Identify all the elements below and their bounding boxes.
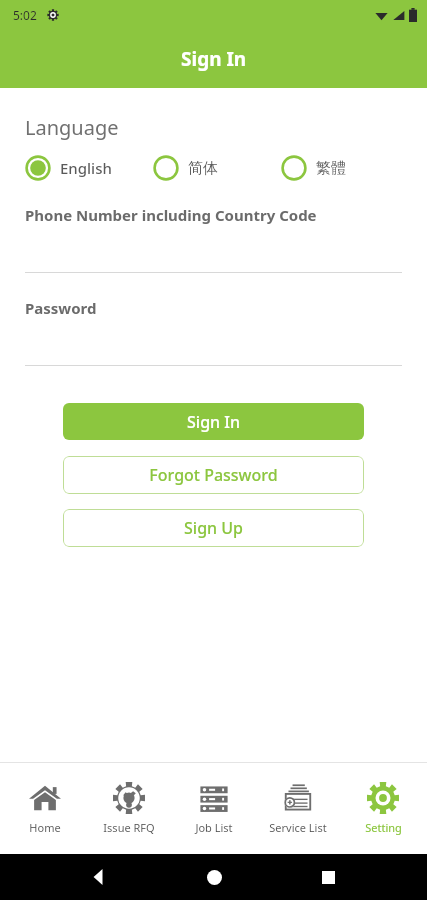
staticText: Phone Number including Country Code — [25, 205, 317, 225]
staticText: Home — [29, 820, 61, 835]
button[interactable]: Service List — [258, 777, 338, 839]
button[interactable]: Sign In — [63, 403, 364, 440]
button[interactable]: Back — [84, 862, 114, 892]
staticText: Service List — [269, 820, 327, 835]
button[interactable]: Home — [5, 777, 85, 839]
button[interactable]: 繁體 — [281, 153, 402, 183]
button[interactable]: Job List — [174, 777, 254, 839]
button[interactable]: Home — [199, 862, 229, 892]
staticText: Sign In — [181, 46, 247, 72]
button[interactable]: Recent apps — [313, 862, 343, 892]
staticText: 简体 — [188, 159, 218, 178]
staticText: Setting — [365, 820, 402, 835]
button[interactable]: Sign Up — [63, 509, 364, 547]
staticText: Sign Up — [184, 517, 243, 539]
button[interactable]: Issue RFQ — [89, 777, 169, 839]
staticText: English — [60, 158, 112, 178]
staticText: Forgot Password — [149, 464, 278, 486]
staticText: Password — [25, 298, 97, 318]
staticText: Issue RFQ — [103, 820, 155, 835]
staticText: Sign In — [187, 411, 240, 433]
button[interactable]: Forgot Password — [63, 456, 364, 494]
button[interactable]: 简体 — [153, 153, 281, 183]
staticText: 5:02 — [13, 7, 37, 23]
staticText: 繁體 — [316, 159, 346, 178]
button[interactable]: Setting — [343, 777, 423, 839]
staticText: Language — [25, 114, 119, 141]
button[interactable]: English — [25, 153, 153, 183]
staticText: Job List — [195, 820, 233, 835]
